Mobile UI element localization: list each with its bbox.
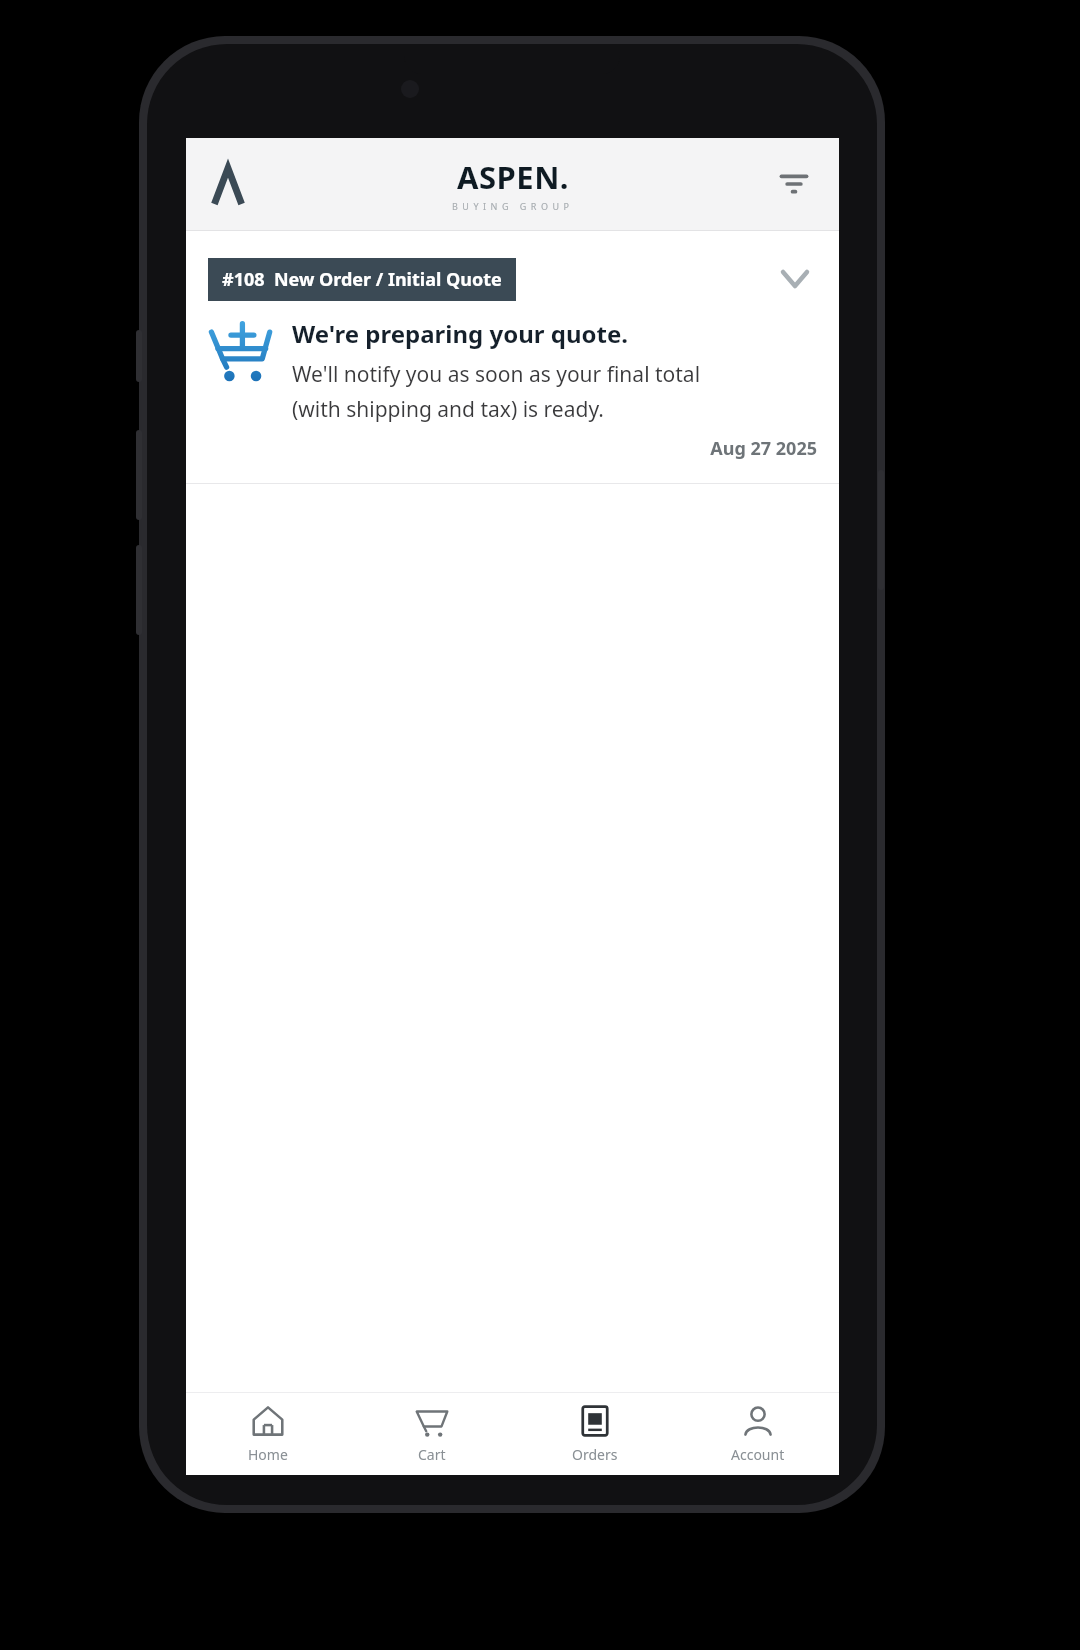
- button[interactable]: Orders: [513, 1393, 676, 1475]
- staticText: Account: [731, 1445, 785, 1464]
- staticText: We're preparing your quote.: [292, 317, 629, 350]
- button[interactable]: Aspen home: [200, 156, 256, 212]
- button[interactable]: Filter: [767, 157, 821, 211]
- staticText: Cart: [418, 1445, 446, 1464]
- button[interactable]: #108 New Order / Initial Quote: [186, 231, 839, 484]
- staticText: Home: [248, 1445, 288, 1464]
- staticText: Aug 27 2025: [292, 436, 817, 461]
- staticText: We'll notify you as soon as your final t…: [292, 360, 701, 389]
- button[interactable]: Account: [676, 1393, 839, 1475]
- staticText: Orders: [572, 1445, 618, 1464]
- button[interactable]: Cart: [350, 1393, 513, 1475]
- staticText: #108 New Order / Initial Quote: [222, 267, 502, 292]
- staticText: BUYING GROUP: [452, 200, 574, 212]
- staticText: ASPEN.: [457, 156, 570, 198]
- button[interactable]: Expand order: [773, 257, 817, 301]
- button[interactable]: Home: [186, 1393, 350, 1475]
- staticText: (with shipping and tax) is ready.: [292, 395, 604, 424]
